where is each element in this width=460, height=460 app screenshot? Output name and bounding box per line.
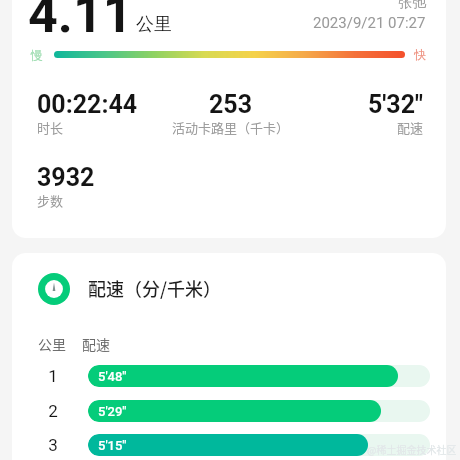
staticText: 时长 (37, 118, 64, 137)
staticText: 4.11 (28, 0, 133, 45)
staticText: 2 (40, 401, 66, 421)
button[interactable]: 2 (40, 400, 430, 422)
staticText: 快 (414, 47, 426, 62)
button[interactable]: 3 (40, 434, 430, 456)
staticText: 公里 (136, 13, 172, 36)
other: Pace (38, 273, 70, 305)
staticText: 活动卡路里（千卡） (172, 118, 290, 137)
staticText: 配速 (82, 334, 110, 354)
staticText: @稀土掘金技术社区 (367, 442, 457, 456)
staticText: 253 (209, 90, 253, 119)
button[interactable]: 00:22:44 (37, 90, 166, 138)
staticText: 5'15" (98, 438, 127, 453)
button[interactable]: 1 (40, 365, 430, 387)
staticText: 张弛 (398, 0, 426, 12)
staticText: 5'32" (368, 90, 424, 119)
staticText: 配速 (397, 118, 424, 137)
staticText: 2023/9/21 07:27 (313, 14, 426, 32)
staticText: 5'29" (98, 404, 127, 419)
staticText: 3932 (37, 163, 95, 192)
staticText: 慢 (31, 47, 43, 62)
button[interactable]: 5'32" (295, 90, 424, 138)
staticText: 步数 (37, 191, 64, 210)
button[interactable]: Pace (39, 272, 446, 304)
staticText: 5'48" (98, 369, 127, 384)
button[interactable]: 253 (166, 90, 295, 138)
button[interactable]: 3932 (37, 163, 166, 211)
staticText: 公里 (38, 334, 66, 354)
staticText: 配速（分/千米） (88, 275, 222, 301)
staticText: 1 (40, 366, 66, 386)
staticText: 3 (40, 435, 66, 455)
staticText: 00:22:44 (37, 90, 138, 119)
